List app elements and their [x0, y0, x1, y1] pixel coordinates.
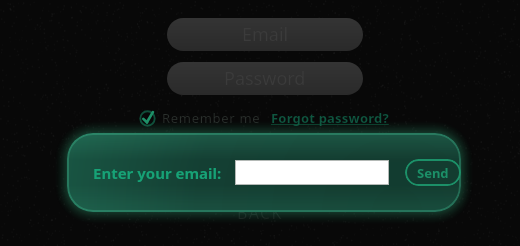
button[interactable]: BACK	[237, 202, 283, 224]
button[interactable]: Password	[167, 62, 363, 95]
staticText: Forgot password?	[271, 109, 389, 127]
other: Remember me	[139, 110, 156, 127]
button[interactable]: Remember me	[139, 109, 261, 127]
button[interactable]: Send	[405, 159, 461, 186]
staticText: Enter your email:	[93, 163, 222, 183]
staticText: Send	[417, 164, 449, 182]
staticText: Email	[242, 22, 289, 47]
staticText: Password	[224, 66, 306, 91]
staticText: BACK	[237, 202, 283, 224]
button[interactable]: Email	[167, 18, 363, 51]
button[interactable]: Forgot password?	[271, 109, 389, 127]
staticText: Remember me	[162, 109, 261, 127]
